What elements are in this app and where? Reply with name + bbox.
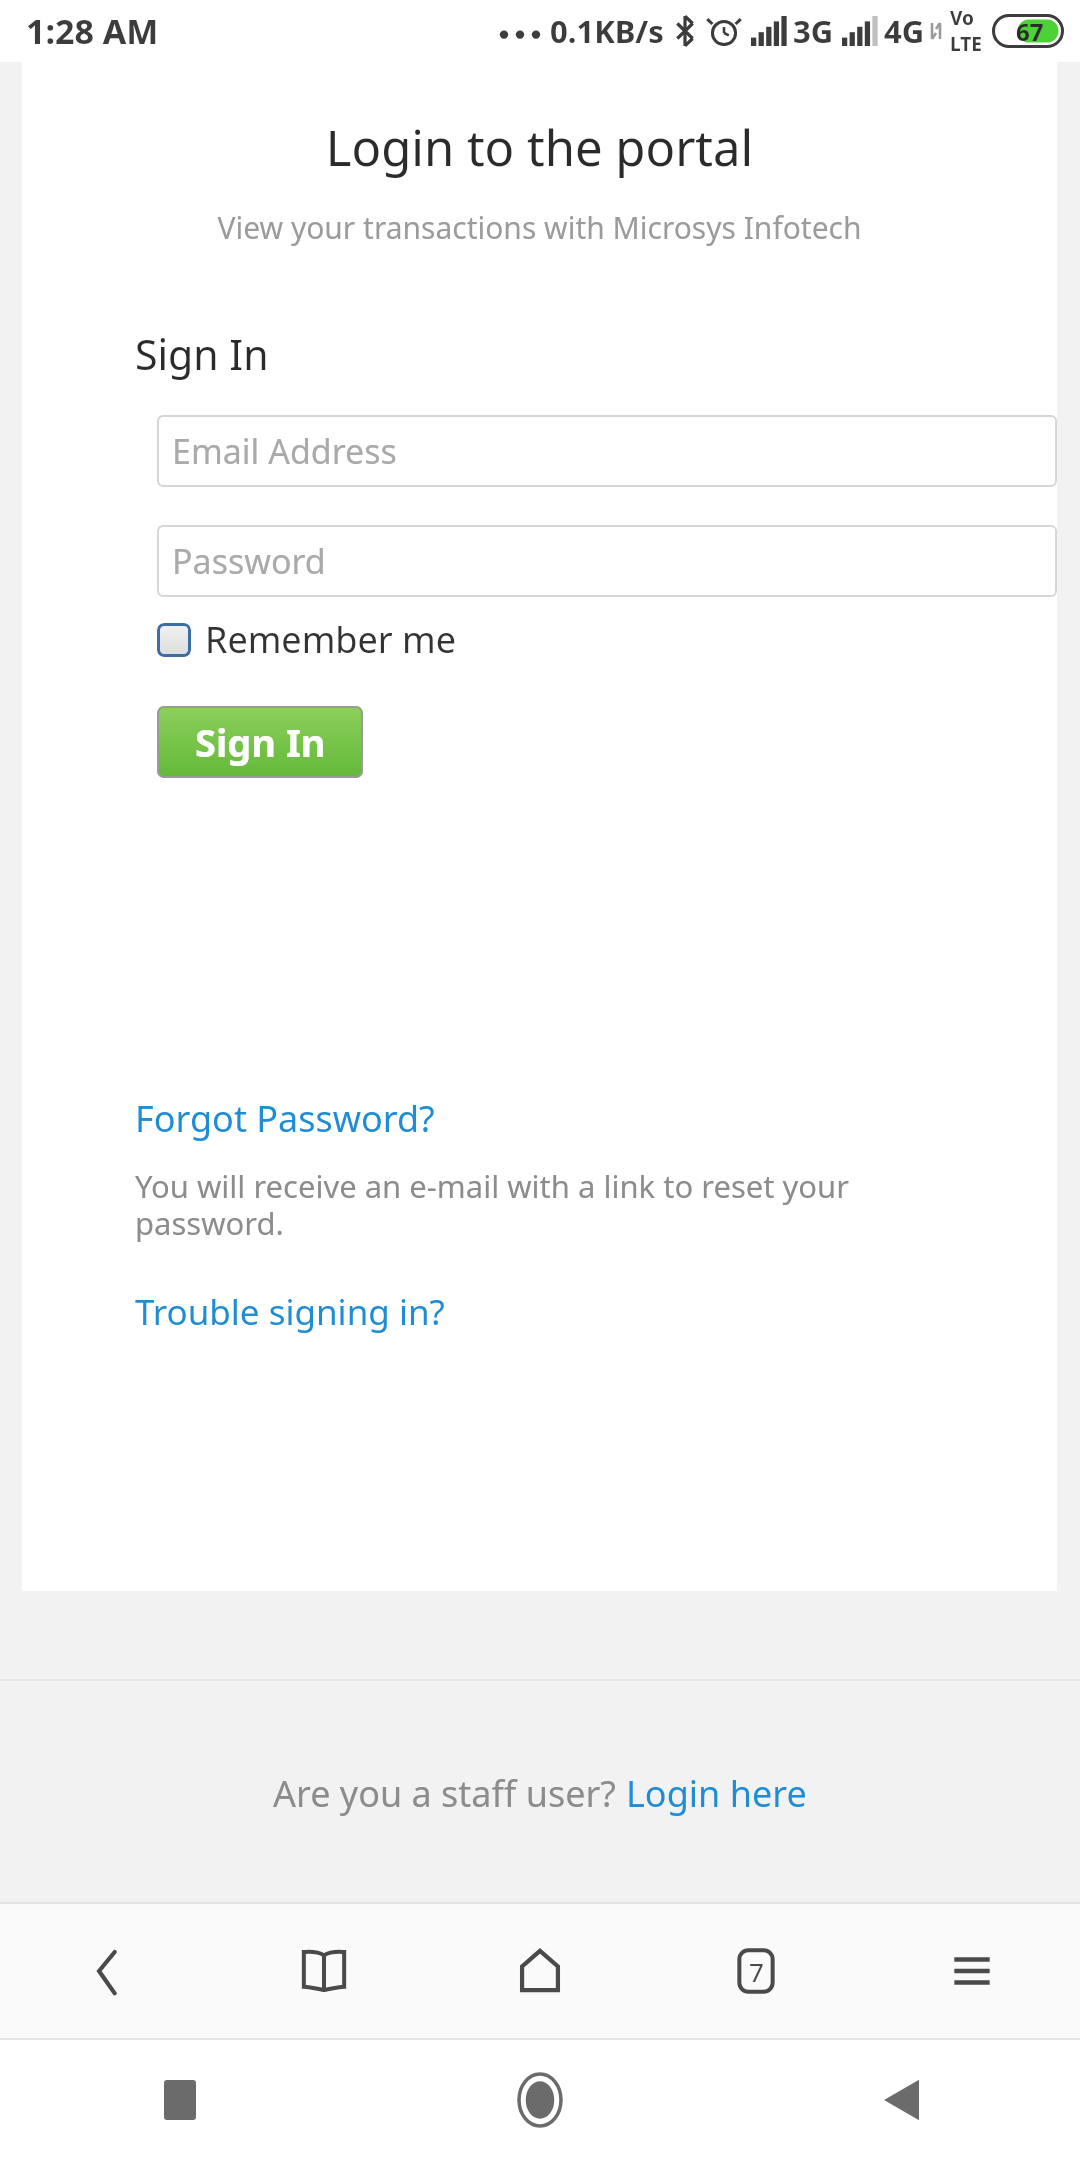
staticText: Login to the portal xyxy=(22,114,1057,181)
staticText: 1:28 AM xyxy=(26,8,159,54)
button[interactable]: Bookmarks xyxy=(216,1904,432,2038)
staticText: Trouble signing in? xyxy=(135,1288,445,1336)
staticText: Password xyxy=(172,538,326,584)
staticText: 3G xyxy=(793,10,834,52)
staticText: Remember me xyxy=(205,615,456,664)
button[interactable]: Tabs xyxy=(648,1904,864,2038)
staticText: View your transactions with Microsys Inf… xyxy=(22,207,1057,248)
button[interactable]: Password xyxy=(157,525,1057,597)
button[interactable]: Back xyxy=(0,1904,216,2038)
staticText: Sign In xyxy=(135,326,269,382)
staticText: 67 xyxy=(1016,15,1044,48)
button[interactable]: Trouble signing in? xyxy=(135,1288,445,1336)
button[interactable]: Forgot Password? xyxy=(135,1094,435,1143)
staticText: Login here xyxy=(626,1769,807,1818)
staticText: Forgot Password? xyxy=(135,1094,435,1143)
button[interactable]: Sign In xyxy=(157,706,363,778)
button[interactable]: Email Address xyxy=(157,415,1057,487)
button[interactable]: Remember me xyxy=(157,615,456,664)
staticText: Sign In xyxy=(195,716,326,768)
button[interactable]: Menu xyxy=(864,1904,1080,2038)
button[interactable]: Home xyxy=(360,2040,720,2160)
staticText: LTE xyxy=(950,31,982,57)
staticText: You will receive an e-mail with a link t… xyxy=(135,1165,937,1244)
button[interactable]: Home xyxy=(432,1904,648,2038)
staticText: Vo xyxy=(950,5,974,31)
staticText: 4G xyxy=(884,10,925,52)
staticText: 7 xyxy=(749,1954,764,1989)
staticText: Email Address xyxy=(172,428,397,474)
button[interactable]: Recents xyxy=(0,2040,360,2160)
staticText: Are you a staff user? xyxy=(273,1769,626,1818)
button[interactable]: Are you a staff user? xyxy=(273,1769,807,1818)
staticText: 0.1KB/s xyxy=(550,10,664,52)
button[interactable]: Back xyxy=(720,2040,1080,2160)
